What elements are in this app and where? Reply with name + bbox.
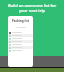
button[interactable]: [8, 37, 33, 40]
staticText: Build an awesome list for your next trip: [6, 3, 58, 13]
button[interactable]: [8, 46, 33, 49]
staticText: Packing list: [8, 19, 33, 23]
button[interactable]: [8, 43, 33, 46]
staticText: 12 items: [8, 25, 33, 28]
button[interactable]: [8, 49, 33, 52]
button[interactable]: [8, 31, 33, 34]
button[interactable]: [8, 34, 33, 37]
button[interactable]: [8, 40, 33, 43]
